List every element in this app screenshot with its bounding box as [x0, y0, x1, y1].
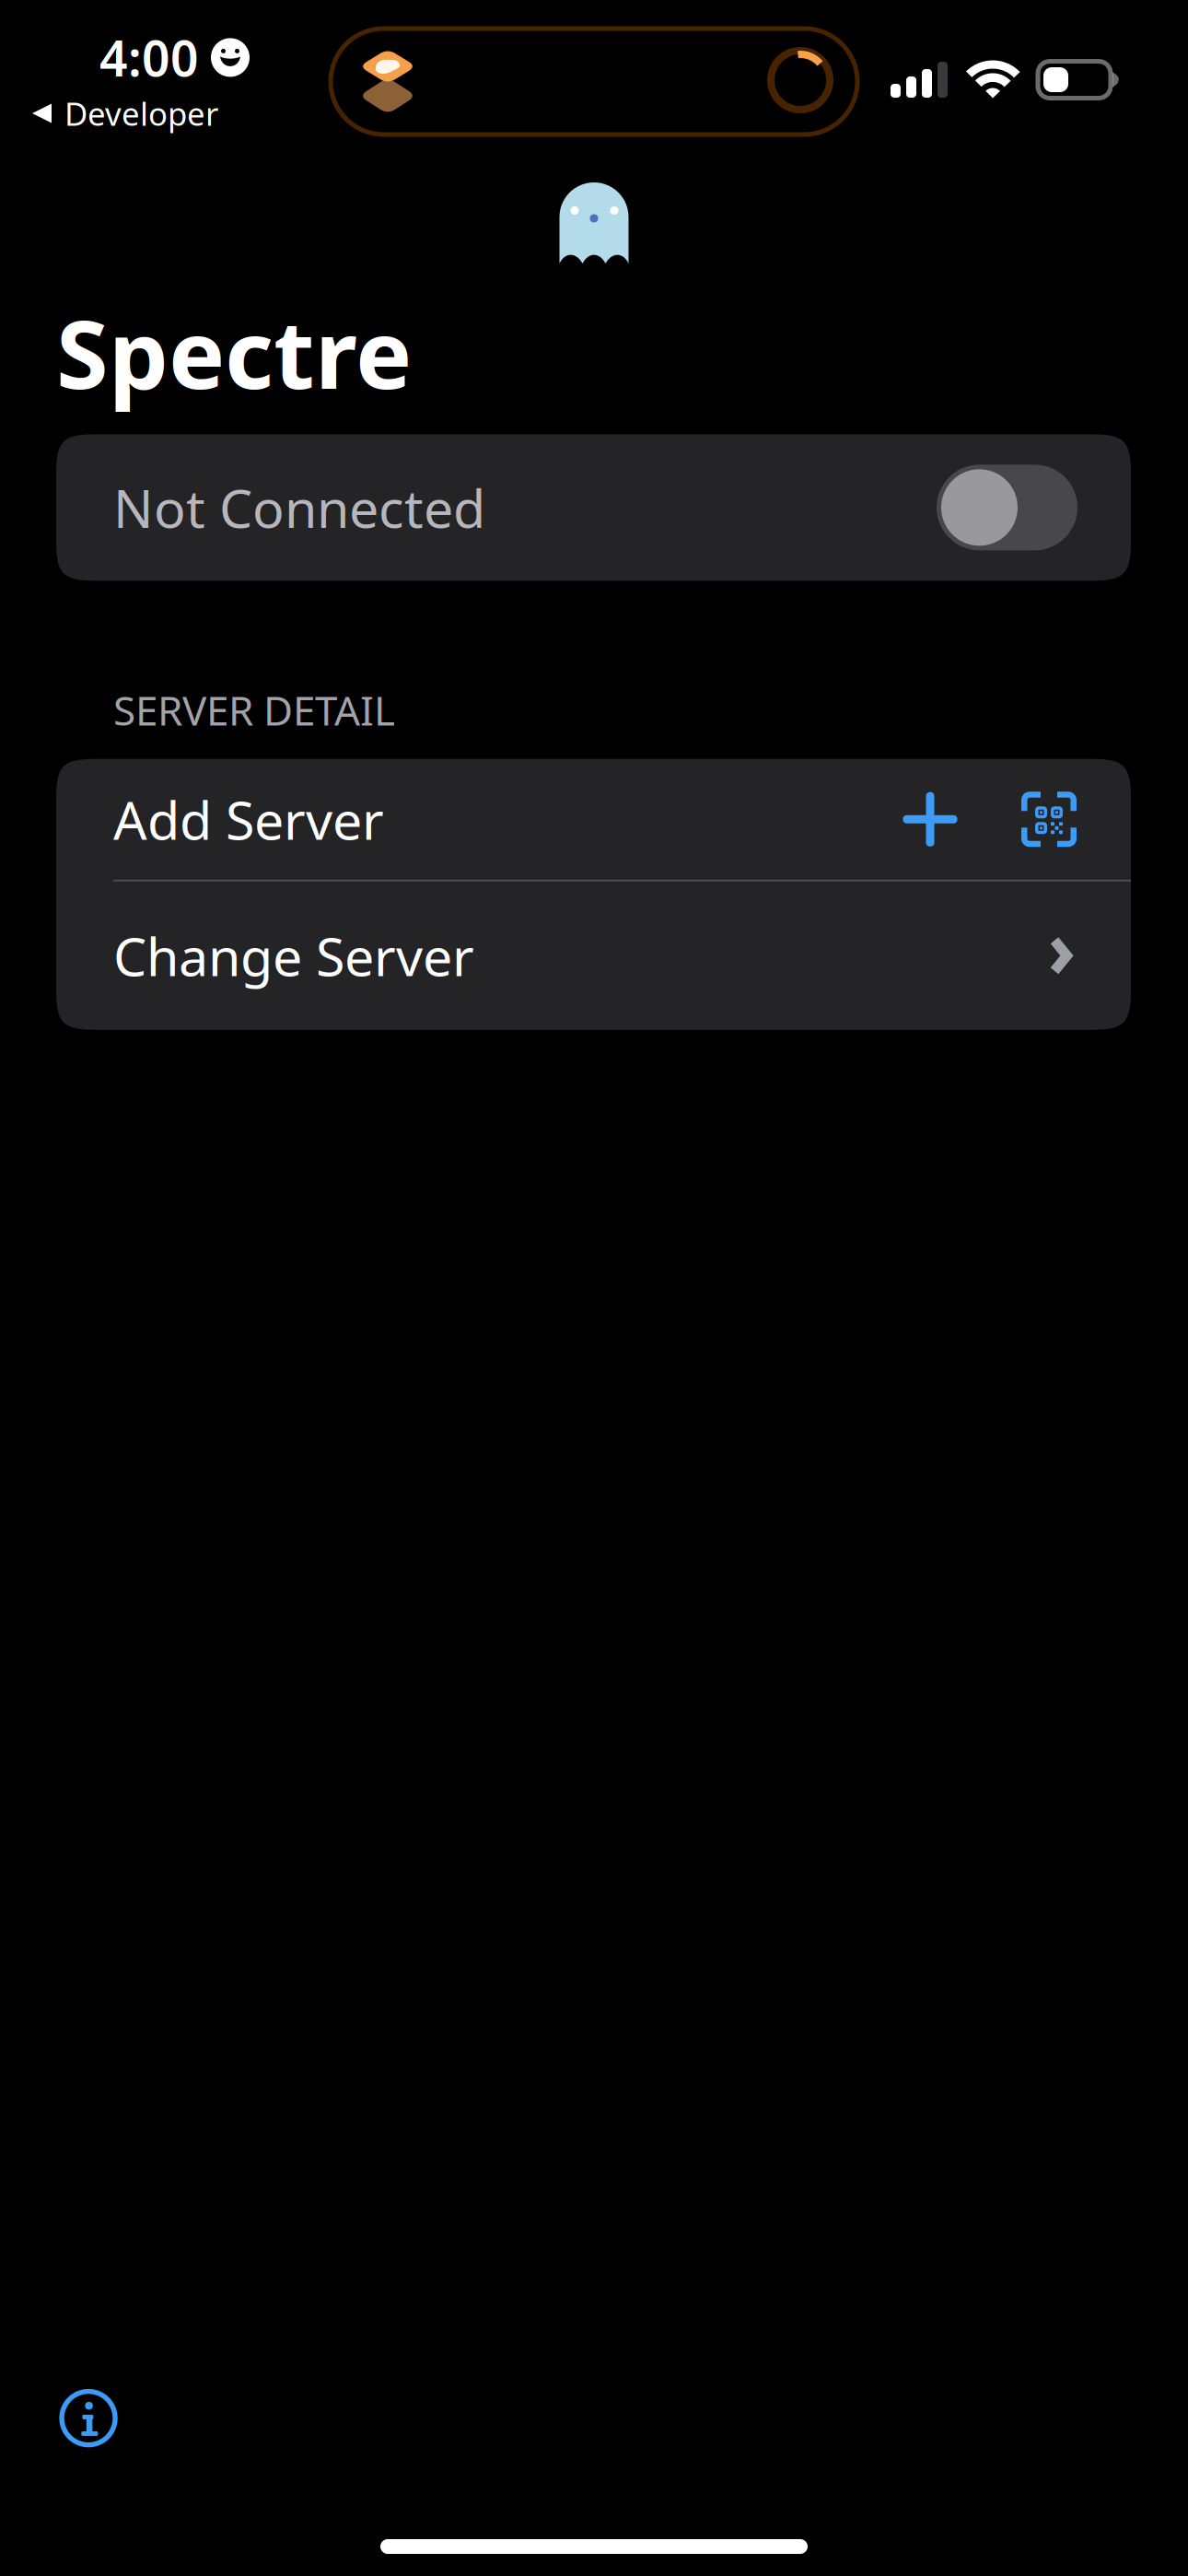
staticText: Add Server: [113, 784, 384, 854]
button[interactable]: Change Server: [56, 882, 1131, 1030]
staticText: Developer: [64, 92, 218, 135]
button[interactable]: Not Connected: [56, 434, 1131, 581]
staticText: Spectre: [56, 289, 412, 415]
button[interactable]: Info: [0, 2388, 116, 2446]
staticText: Change Server: [113, 921, 474, 991]
button[interactable]: Back to Developer: [0, 0, 218, 135]
staticText: 4:00: [99, 25, 199, 90]
button[interactable]: Add Server: [56, 759, 1131, 880]
staticText: Not Connected: [113, 472, 485, 543]
staticText: SERVER DETAIL: [113, 683, 395, 737]
